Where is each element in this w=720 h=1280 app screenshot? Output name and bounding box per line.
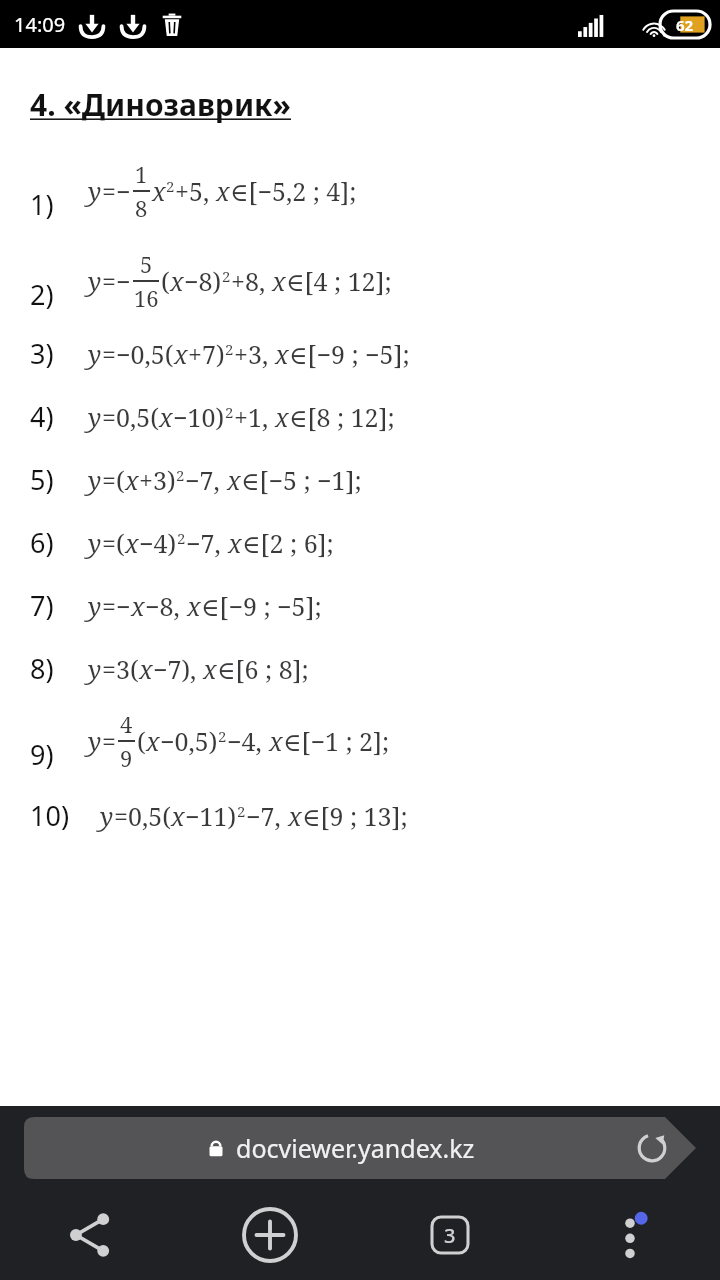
- button[interactable]: Tabs, 3 open: [360, 1190, 540, 1280]
- staticText: 14:09: [14, 11, 66, 38]
- staticText: =−: [102, 589, 131, 623]
- button[interactable]: More options: [540, 1190, 720, 1280]
- staticText: 9): [30, 736, 54, 773]
- staticText: x: [131, 589, 145, 623]
- staticText: x: [275, 337, 289, 371]
- staticText: 2: [218, 726, 227, 746]
- staticText: ∈[−5 ; −1];: [241, 463, 362, 497]
- staticText: −8): [184, 264, 222, 298]
- staticText: y: [88, 264, 102, 298]
- staticText: 3): [30, 335, 54, 372]
- staticText: x: [288, 799, 302, 833]
- staticText: 8: [135, 193, 148, 223]
- staticText: −7,: [246, 799, 288, 833]
- staticText: 8): [30, 650, 54, 687]
- staticText: ∈[−9 ; −5];: [289, 337, 410, 371]
- staticText: docviewer.yandex.kz: [236, 1131, 475, 1165]
- staticText: x: [227, 463, 241, 497]
- staticText: x: [187, 589, 201, 623]
- staticText: +5,: [175, 174, 216, 208]
- staticText: 9: [120, 743, 133, 773]
- staticText: x: [146, 724, 160, 758]
- staticText: −11): [185, 799, 237, 833]
- staticText: 1): [30, 186, 54, 223]
- staticText: −7,: [186, 526, 228, 560]
- staticText: y: [88, 337, 102, 371]
- staticText: ∈[8 ; 12];: [289, 400, 395, 434]
- staticText: 2: [225, 402, 234, 422]
- staticText: 2: [177, 528, 186, 548]
- staticText: 62: [676, 15, 694, 35]
- staticText: =3(: [102, 652, 139, 686]
- staticText: 4: [120, 709, 133, 739]
- staticText: x: [125, 526, 139, 560]
- staticText: (: [161, 264, 170, 298]
- staticText: =0,5(: [102, 400, 159, 434]
- staticText: ∈[−9 ; −5];: [201, 589, 322, 623]
- staticText: =−: [102, 264, 131, 298]
- staticText: 4. «Динозаврик»: [30, 84, 291, 125]
- staticText: y: [88, 724, 102, 758]
- staticText: x: [174, 337, 188, 371]
- staticText: 2: [176, 465, 185, 485]
- staticText: −0,5): [160, 724, 218, 758]
- staticText: (: [137, 724, 146, 758]
- staticText: −4,: [227, 724, 269, 758]
- staticText: =0,5(: [114, 799, 171, 833]
- staticText: 5): [30, 461, 54, 498]
- staticText: x: [170, 264, 184, 298]
- staticText: x: [269, 724, 283, 758]
- staticText: −7,: [185, 463, 227, 497]
- staticText: 16: [134, 283, 159, 313]
- staticText: =(: [102, 526, 125, 560]
- staticText: +3): [139, 463, 176, 497]
- staticText: +3,: [234, 337, 275, 371]
- button[interactable]: Share: [0, 1190, 180, 1280]
- staticText: −4): [139, 526, 177, 560]
- staticText: −10): [173, 400, 225, 434]
- staticText: 1: [135, 159, 148, 189]
- staticText: 5: [140, 249, 153, 279]
- staticText: ∈[2 ; 6];: [242, 526, 334, 560]
- staticText: y: [88, 589, 102, 623]
- staticText: ∈[−1 ; 2];: [283, 724, 390, 758]
- staticText: x: [125, 463, 139, 497]
- staticText: =−: [102, 174, 131, 208]
- staticText: =(: [102, 463, 125, 497]
- staticText: 3: [444, 1222, 456, 1249]
- staticText: x: [203, 652, 217, 686]
- staticText: y: [88, 463, 102, 497]
- staticText: 6): [30, 524, 54, 561]
- staticText: x: [228, 526, 242, 560]
- staticText: 2: [237, 801, 246, 821]
- button[interactable]: Reload page: [632, 1128, 672, 1168]
- staticText: 10): [30, 797, 69, 834]
- staticText: ∈[9 ; 13];: [302, 799, 408, 833]
- staticText: −7),: [153, 652, 203, 686]
- staticText: 2: [166, 176, 175, 196]
- staticText: y: [88, 400, 102, 434]
- staticText: =−0,5(: [102, 337, 174, 371]
- staticText: 2: [225, 339, 234, 359]
- staticText: −8,: [145, 589, 187, 623]
- staticText: +1,: [234, 400, 275, 434]
- button[interactable]: New tab: [180, 1190, 360, 1280]
- staticText: 2: [222, 266, 231, 286]
- staticText: ∈[4 ; 12];: [286, 264, 392, 298]
- staticText: x: [139, 652, 153, 686]
- staticText: +8,: [231, 264, 272, 298]
- staticText: ∈[6 ; 8];: [217, 652, 309, 686]
- staticText: y: [88, 174, 102, 208]
- staticText: +7): [188, 337, 225, 371]
- staticText: y: [88, 652, 102, 686]
- staticText: x: [159, 400, 173, 434]
- button[interactable]: docviewer.yandex.kz: [24, 1117, 696, 1179]
- staticText: y: [88, 526, 102, 560]
- staticText: 7): [30, 587, 54, 624]
- staticText: =: [102, 724, 116, 758]
- staticText: y: [100, 799, 114, 833]
- staticText: 2): [30, 276, 54, 313]
- staticText: x: [275, 400, 289, 434]
- staticText: x: [171, 799, 185, 833]
- staticText: x: [152, 174, 166, 208]
